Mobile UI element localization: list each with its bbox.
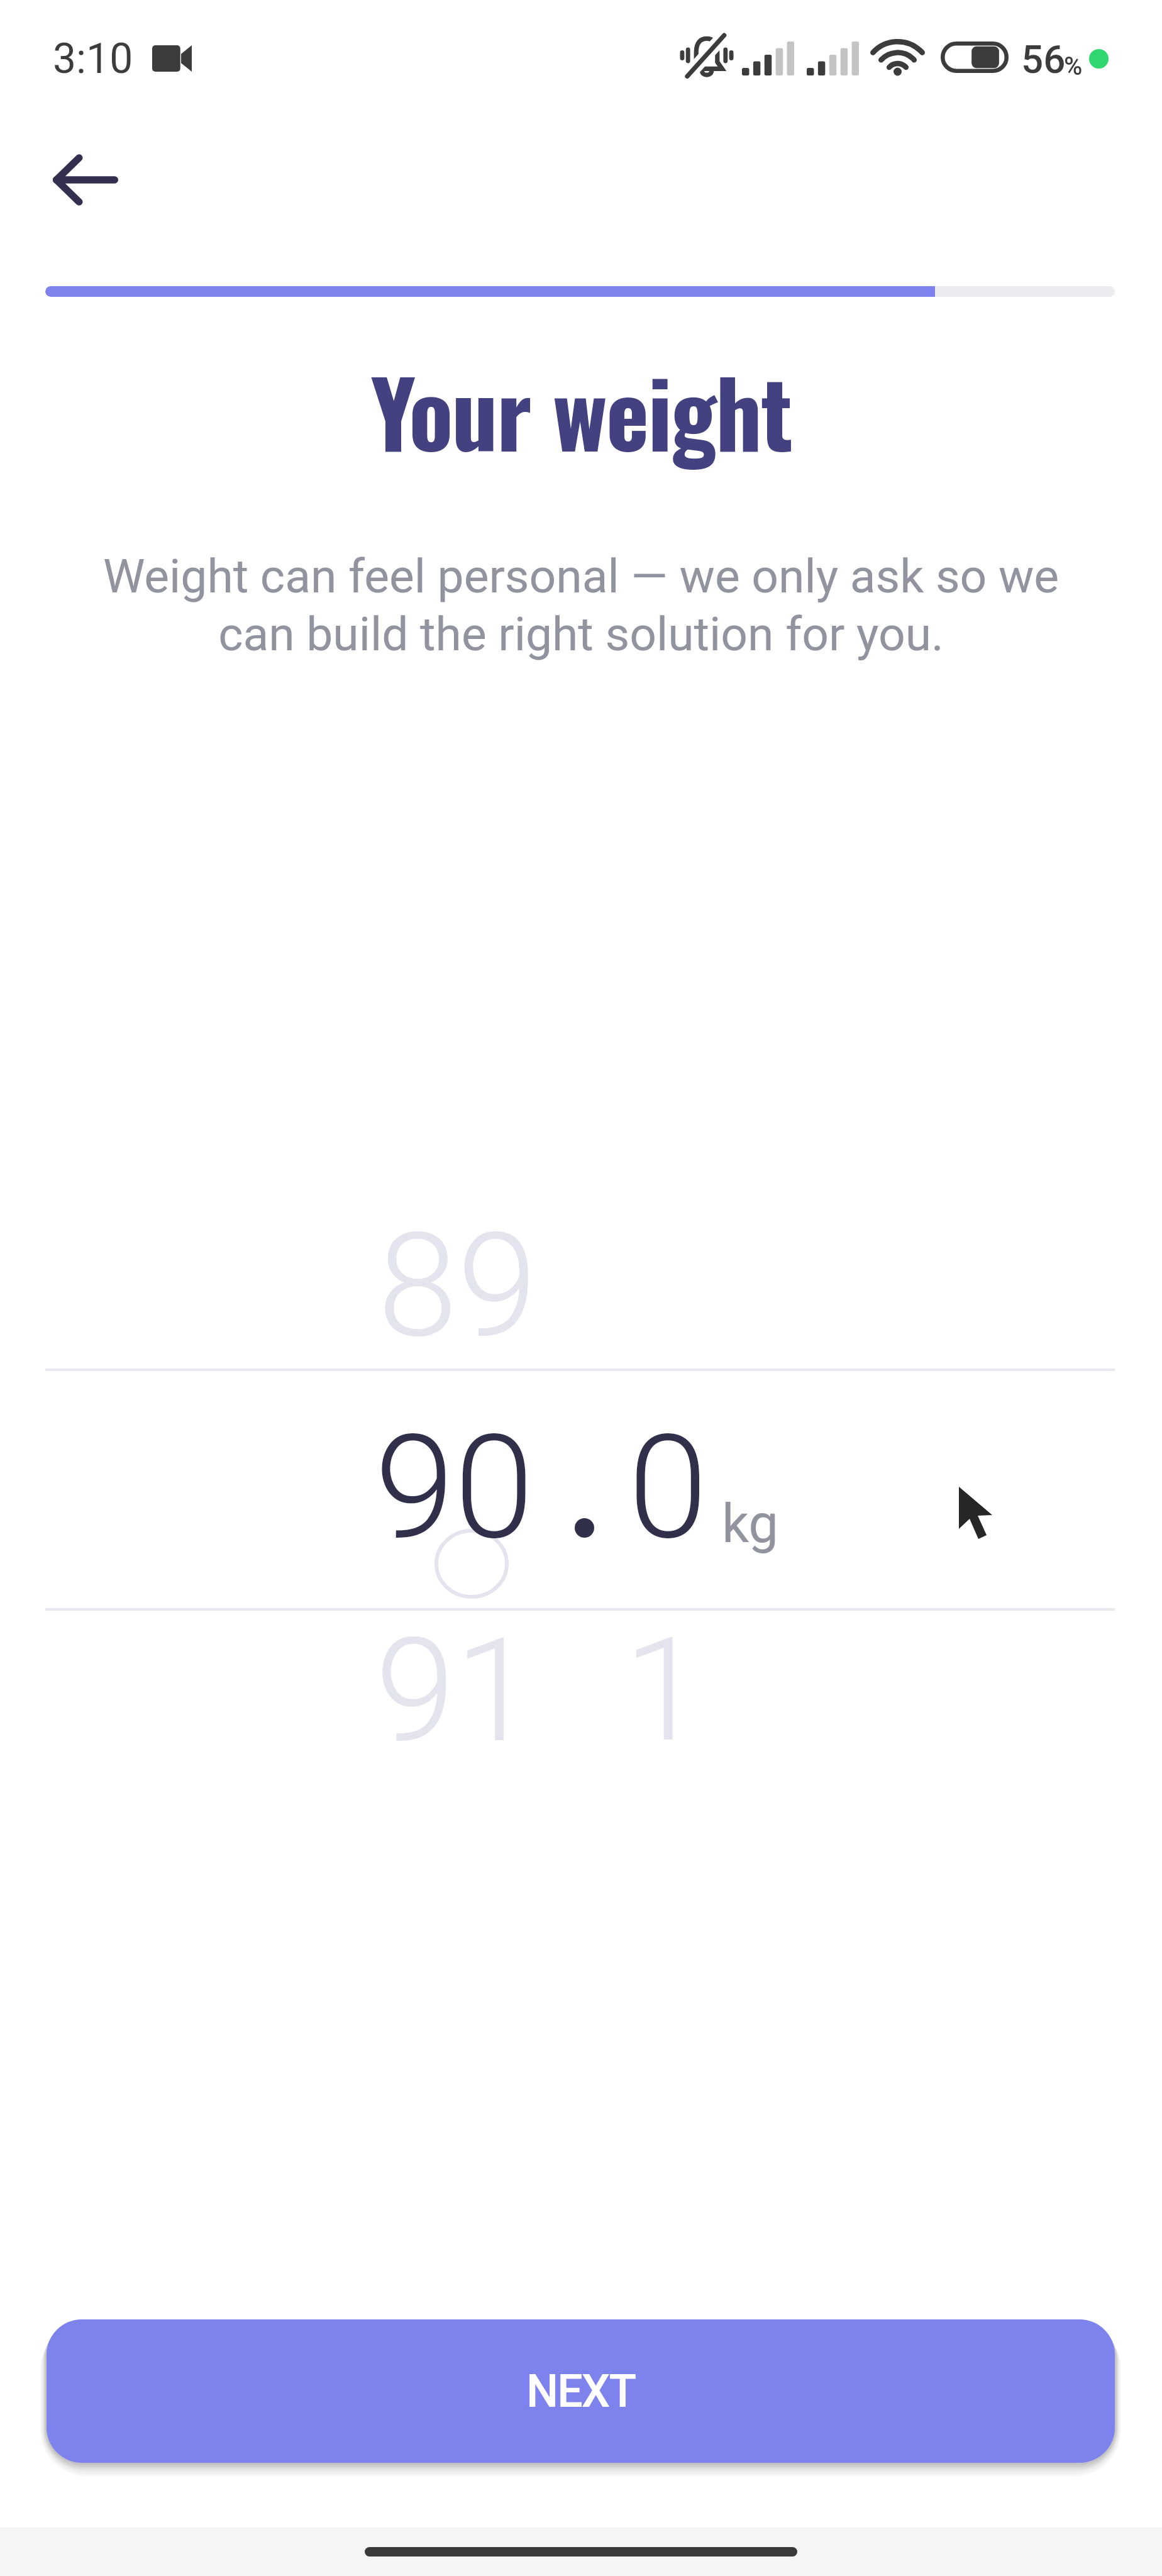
staticText: Your weight xyxy=(370,342,792,478)
button[interactable]: NEXT xyxy=(47,2319,1115,2463)
button[interactable]: Back xyxy=(32,133,139,226)
staticText: 91 xyxy=(375,1607,534,1775)
staticText: 1 xyxy=(624,1606,704,1774)
staticText: NEXT xyxy=(526,2365,636,2418)
button[interactable]: Whole kilograms wheel, 90 xyxy=(340,1182,585,1761)
staticText: % xyxy=(1064,52,1083,81)
staticText: 0 xyxy=(628,1404,708,1572)
staticText: 90 xyxy=(375,1404,534,1572)
staticText: Weight can feel personal — we only ask s… xyxy=(89,548,1073,662)
staticText: 3:10 xyxy=(53,35,133,83)
staticText: 56 xyxy=(1021,36,1066,82)
button[interactable]: Decimal wheel, 0 xyxy=(604,1182,767,1761)
staticText: kg xyxy=(722,1492,778,1555)
staticText: 89 xyxy=(378,1202,537,1370)
